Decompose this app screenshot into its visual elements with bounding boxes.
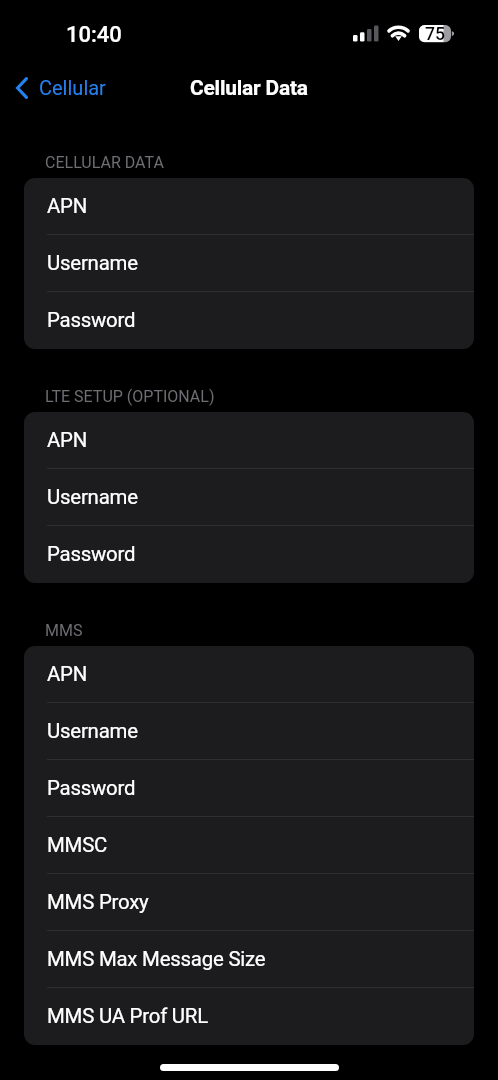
button[interactable]: APN: [24, 178, 474, 235]
button[interactable]: MMS Proxy: [24, 874, 474, 931]
other: Cellular signal strength: [353, 24, 379, 42]
staticText: MMS Proxy: [47, 890, 149, 914]
button[interactable]: APN: [24, 412, 474, 469]
staticText: Username: [47, 719, 138, 743]
staticText: Password: [47, 776, 136, 800]
button[interactable]: MMSC: [24, 817, 474, 874]
other: Battery 75 percent: [419, 25, 455, 43]
staticText: Username: [47, 251, 138, 275]
staticText: MMS: [45, 621, 83, 640]
button[interactable]: APN: [24, 646, 474, 703]
button[interactable]: Cellular: [8, 70, 116, 105]
staticText: CELLULAR DATA: [45, 153, 164, 172]
staticText: LTE SETUP (OPTIONAL): [45, 387, 215, 406]
staticText: MMS Max Message Size: [47, 947, 266, 971]
button[interactable]: Username: [24, 703, 474, 760]
button[interactable]: Password: [24, 292, 474, 349]
staticText: Password: [47, 542, 136, 566]
staticText: Cellular Data: [190, 76, 308, 100]
staticText: Username: [47, 485, 138, 509]
button[interactable]: Username: [24, 235, 474, 292]
button[interactable]: Username: [24, 469, 474, 526]
staticText: Cellular: [39, 76, 106, 99]
button[interactable]: MMS Max Message Size: [24, 931, 474, 988]
staticText: MMS UA Prof URL: [47, 1004, 208, 1028]
staticText: MMSC: [47, 833, 108, 857]
staticText: APN: [47, 194, 88, 218]
button[interactable]: Password: [24, 526, 474, 583]
button[interactable]: MMS UA Prof URL: [24, 988, 474, 1045]
staticText: APN: [47, 428, 88, 452]
other: Wi-Fi connected: [385, 22, 413, 44]
staticText: 10:40: [66, 22, 122, 48]
staticText: APN: [47, 662, 88, 686]
button[interactable]: Password: [24, 760, 474, 817]
staticText: 75: [425, 24, 445, 45]
staticText: Password: [47, 308, 136, 332]
